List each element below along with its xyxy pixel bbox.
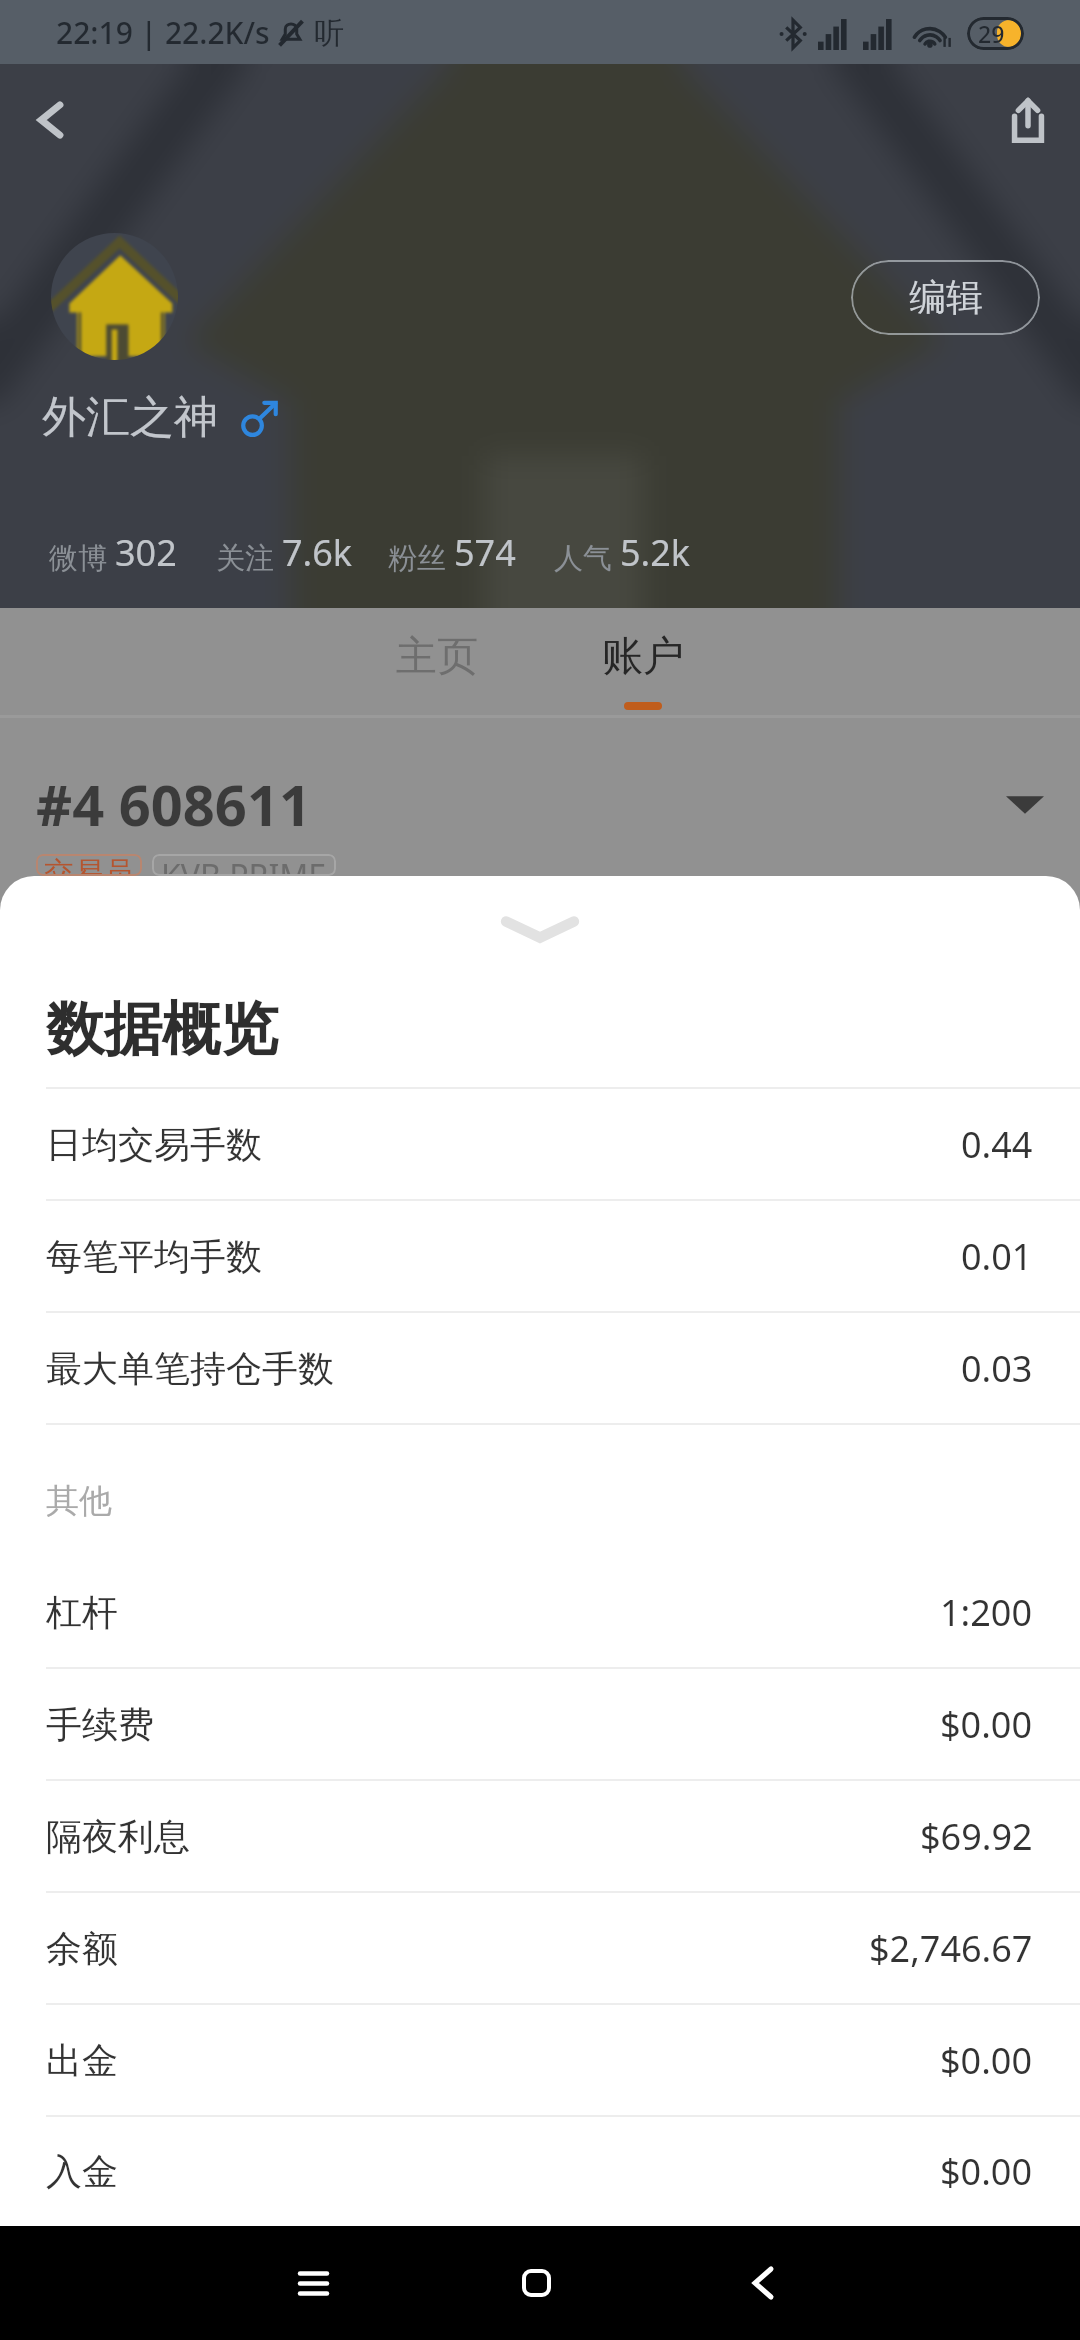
staticText: 29 (978, 18, 1005, 49)
button[interactable]: 人气 (554, 528, 691, 577)
button[interactable]: Home (486, 2226, 586, 2340)
staticText: 杠杆 (46, 1590, 118, 1635)
button[interactable]: Back (16, 84, 88, 156)
button[interactable]: 隔夜利息 (0, 1781, 1080, 1891)
staticText: 入金 (46, 2149, 118, 2194)
staticText: 574 (454, 528, 516, 577)
staticText: 账户 (602, 631, 684, 683)
staticText: 每笔平均手数 (46, 1234, 262, 1279)
button[interactable]: 微博 (49, 528, 177, 577)
button[interactable]: Recents (263, 2226, 363, 2340)
button[interactable]: 出金 (0, 2005, 1080, 2115)
button[interactable]: Avatar (51, 233, 178, 360)
staticText: 交易员 (44, 854, 134, 876)
button[interactable]: 主页 (334, 608, 540, 715)
staticText: $0.00 (940, 2147, 1033, 2196)
staticText: $2,746.67 (869, 1924, 1033, 1973)
staticText: 隔夜利息 (46, 1814, 190, 1859)
button[interactable]: 账户 (540, 608, 746, 715)
staticText: 粉丝 (388, 540, 446, 577)
staticText: 数据概览 (46, 993, 278, 1066)
staticText: 微博 (49, 540, 107, 577)
button[interactable]: Back (713, 2226, 813, 2340)
button[interactable]: 编辑 (851, 260, 1040, 335)
staticText: $69.92 (920, 1812, 1033, 1861)
staticText: 7.6k (282, 528, 353, 577)
staticText: 余额 (46, 1926, 118, 1971)
button[interactable]: Share (992, 84, 1064, 156)
button[interactable]: 余额 (0, 1893, 1080, 2003)
button[interactable]: 手续费 (0, 1669, 1080, 1779)
staticText: 302 (115, 528, 177, 577)
button[interactable]: 杠杆 (0, 1557, 1080, 1667)
button[interactable]: 入金 (0, 2117, 1080, 2226)
staticText: 主页 (396, 631, 478, 683)
staticText: KVB PRIME (161, 854, 327, 876)
staticText: 编辑 (909, 274, 983, 321)
staticText: 出金 (46, 2038, 118, 2083)
staticText: 5.2k (620, 528, 691, 577)
staticText: 日均交易手数 (46, 1122, 262, 1167)
staticText: 外汇之神 (42, 390, 218, 445)
staticText: 0.03 (961, 1344, 1033, 1393)
staticText: 听 (314, 14, 344, 52)
button[interactable]: 日均交易手数 (0, 1089, 1080, 1199)
staticText: 人气 (554, 540, 612, 577)
staticText: 0.44 (961, 1120, 1033, 1169)
staticText: 手续费 (46, 1702, 154, 1747)
staticText: #4 608611 (36, 766, 311, 842)
button[interactable]: 每笔平均手数 (0, 1201, 1080, 1311)
button[interactable]: 关注 (216, 528, 353, 577)
button[interactable]: Collapse (0, 876, 1080, 971)
staticText: 0.01 (961, 1232, 1033, 1281)
staticText: $0.00 (940, 1700, 1033, 1749)
staticText: 关注 (216, 540, 274, 577)
staticText: 1:200 (940, 1588, 1033, 1637)
staticText: 其他 (46, 1480, 112, 1522)
staticText: 22:19 | 22.2K/s (56, 12, 270, 53)
staticText: $0.00 (940, 2036, 1033, 2085)
staticText: 最大单笔持仓手数 (46, 1346, 334, 1391)
button[interactable]: 粉丝 (388, 528, 516, 577)
button[interactable]: 最大单笔持仓手数 (0, 1313, 1080, 1423)
